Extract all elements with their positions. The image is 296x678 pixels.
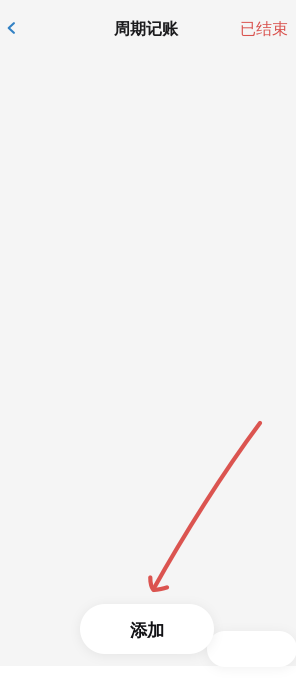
button[interactable]: More	[207, 631, 296, 667]
button[interactable]: 已结束	[228, 0, 296, 51]
staticText: 已结束	[240, 19, 288, 39]
button[interactable]: 添加	[80, 604, 214, 654]
button[interactable]: Back	[0, 0, 28, 47]
staticText: 周期记账	[114, 19, 178, 39]
staticText: 添加	[130, 620, 164, 641]
